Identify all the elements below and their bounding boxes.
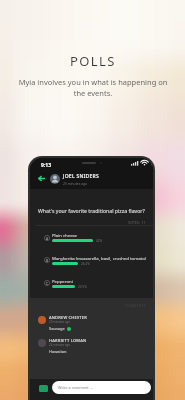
button[interactable]: Write a comment ... xyxy=(52,381,151,394)
staticText: ANDREW CHESTER xyxy=(49,315,87,320)
staticText: Write a comment ... xyxy=(58,385,93,390)
staticText: B xyxy=(46,258,49,262)
staticText: What's your favorite traditional pizza f… xyxy=(38,207,145,214)
staticText: 26.4% xyxy=(81,262,90,266)
staticText: 23.5% xyxy=(78,285,87,289)
staticText: 42% xyxy=(96,239,103,243)
staticText: Hawaiian xyxy=(49,349,67,354)
staticText: Pepperoni xyxy=(52,278,73,284)
staticText: POLLS xyxy=(70,52,116,70)
staticText: 25 minutes ago xyxy=(63,181,87,185)
staticText: A xyxy=(46,236,49,240)
button[interactable]: Back xyxy=(36,173,47,184)
staticText: 20 minutes ago xyxy=(49,320,71,324)
staticText: Sausage xyxy=(49,326,65,331)
staticText: 24 minutes ago xyxy=(49,343,71,347)
staticText: Margherita (mozzarella, basil, crushed t… xyxy=(52,255,147,261)
button[interactable] xyxy=(30,231,153,253)
button[interactable] xyxy=(30,253,153,275)
button[interactable]: Add photo xyxy=(39,385,48,392)
staticText: Plain cheese xyxy=(52,232,78,238)
staticText: 9:13 xyxy=(41,162,51,169)
staticText: HARRIETT LOMAN xyxy=(49,338,87,343)
staticText: VOTES: 11 xyxy=(128,220,146,225)
button[interactable] xyxy=(30,336,153,358)
staticText: Myia involves you in what is happening o… xyxy=(17,77,169,98)
button[interactable] xyxy=(30,276,153,298)
button[interactable] xyxy=(30,313,153,335)
staticText: COMMENTS xyxy=(125,303,146,307)
staticText: JOEL SNIDERS xyxy=(63,173,99,180)
staticText: C xyxy=(46,281,49,285)
